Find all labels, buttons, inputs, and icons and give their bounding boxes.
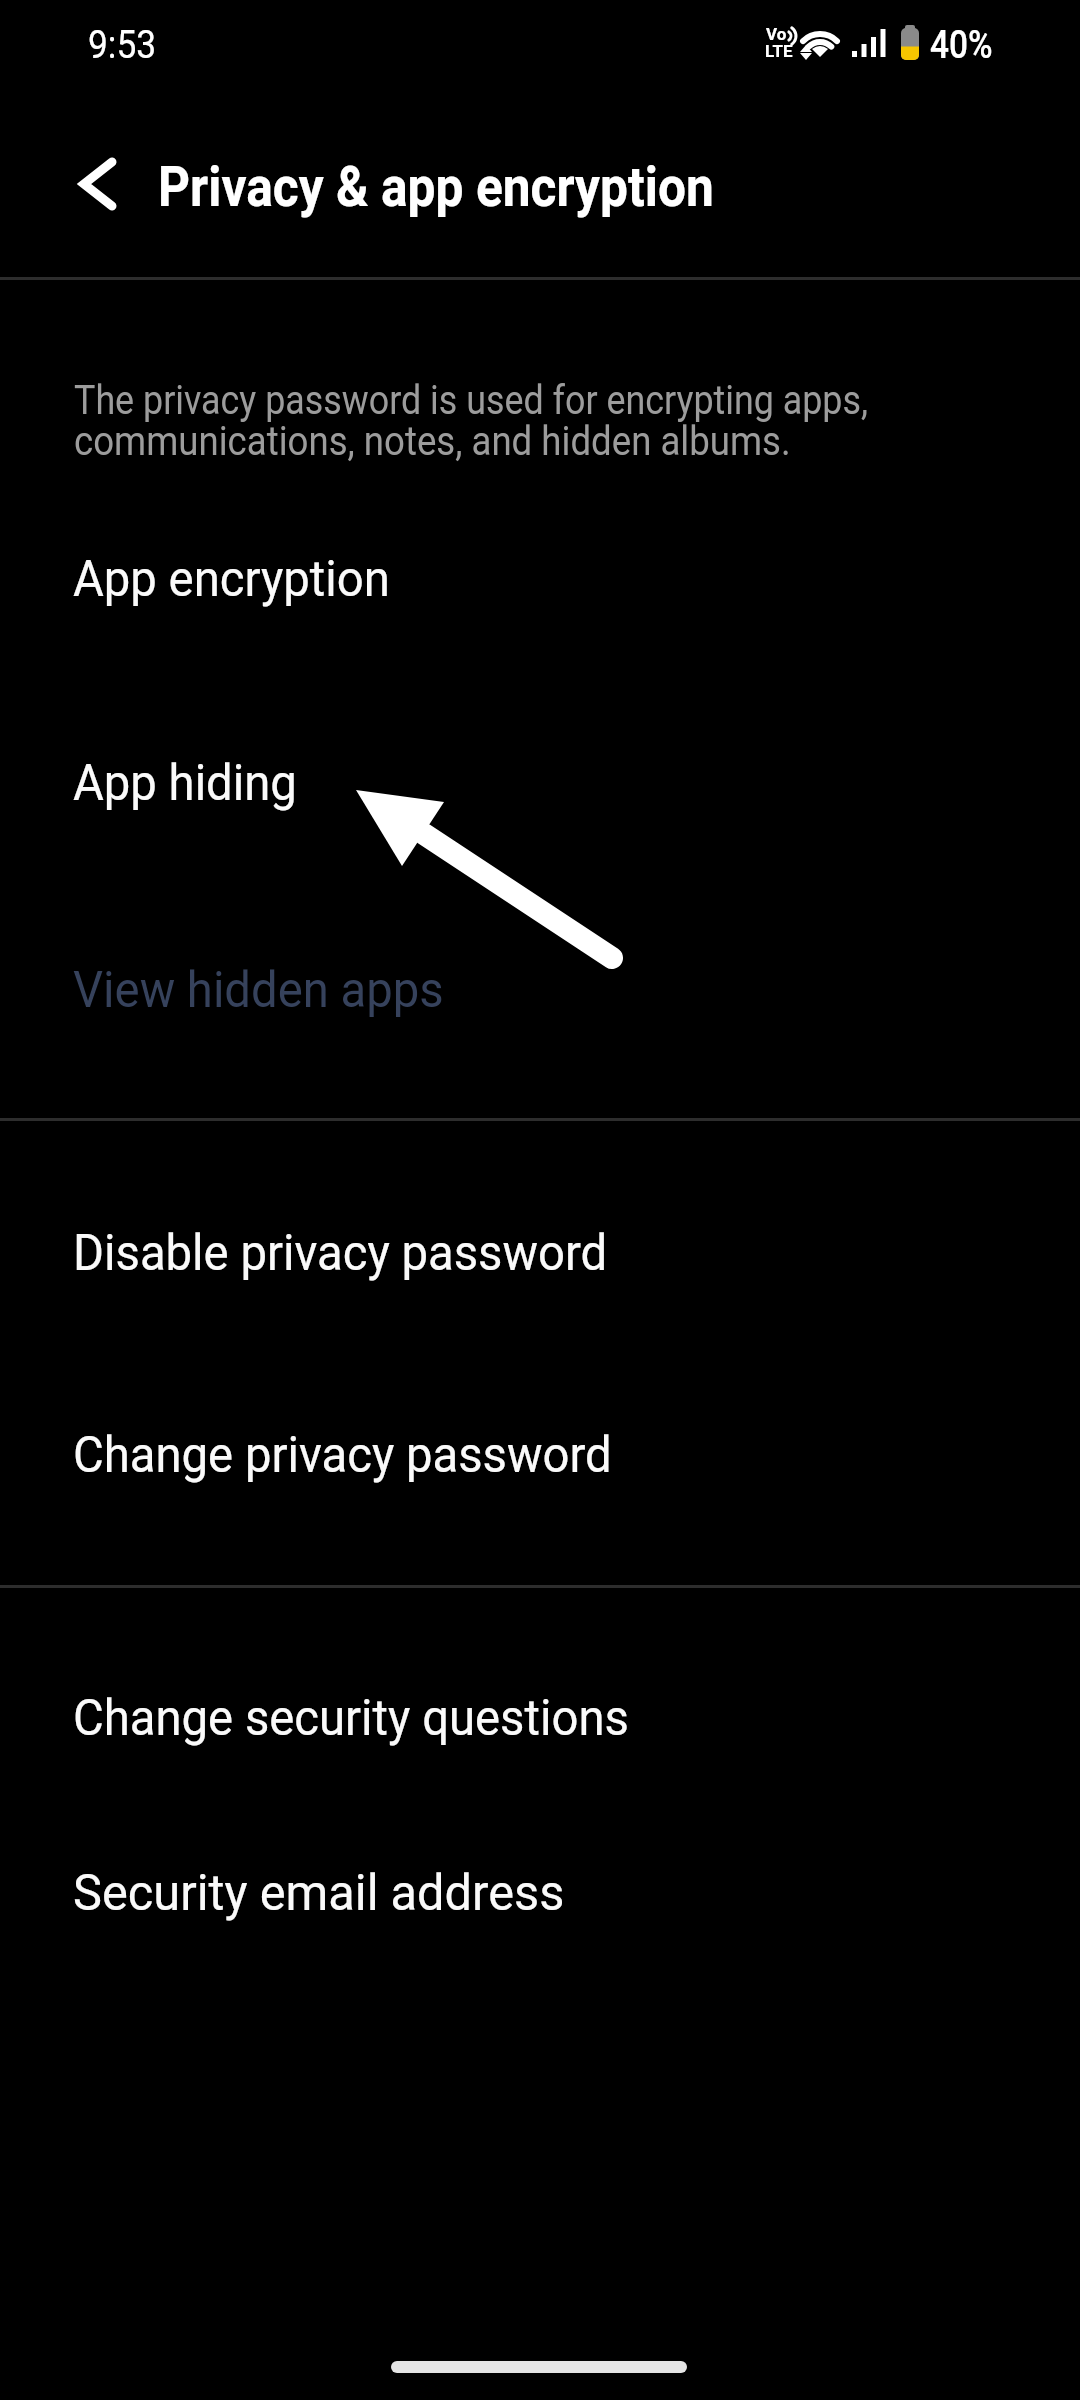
button[interactable]: App encryption bbox=[0, 512, 1080, 647]
staticText: View hidden apps bbox=[73, 961, 444, 1020]
staticText: Security email address bbox=[73, 1864, 564, 1923]
staticText: Privacy & app encryption bbox=[158, 154, 714, 220]
staticText: Vo bbox=[766, 24, 787, 44]
staticText: communications, notes, and hidden albums… bbox=[74, 417, 791, 465]
button[interactable]: App hiding bbox=[0, 716, 1080, 851]
button[interactable]: Change security questions bbox=[0, 1651, 1080, 1786]
button[interactable]: View hidden apps bbox=[0, 923, 1080, 1058]
staticText: Disable privacy password bbox=[73, 1224, 608, 1283]
staticText: App hiding bbox=[73, 754, 297, 813]
staticText: Change security questions bbox=[73, 1689, 630, 1748]
staticText: The privacy password is used for encrypt… bbox=[74, 376, 868, 424]
staticText: LTE bbox=[765, 41, 793, 61]
staticText: 40% bbox=[930, 23, 993, 68]
staticText: Change privacy password bbox=[73, 1426, 612, 1485]
button[interactable] bbox=[55, 148, 135, 224]
staticText: 9:53 bbox=[88, 23, 157, 68]
button[interactable]: Security email address bbox=[0, 1826, 1080, 1961]
button[interactable]: Change privacy password bbox=[0, 1388, 1080, 1523]
staticText: App encryption bbox=[73, 550, 390, 609]
button[interactable]: Disable privacy password bbox=[0, 1186, 1080, 1321]
